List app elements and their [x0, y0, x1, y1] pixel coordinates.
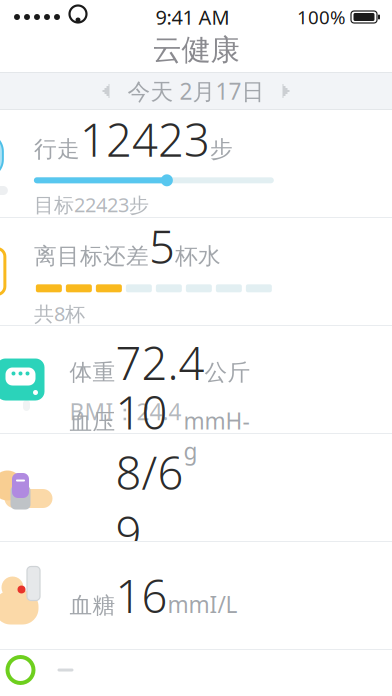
button[interactable]: 血压 — [0, 434, 392, 542]
staticText: 公斤 — [204, 358, 250, 386]
button[interactable]: 离目标还差 — [0, 218, 392, 326]
staticText: 血压 — [69, 408, 115, 436]
button[interactable]: 今天 2月17日 — [0, 73, 392, 109]
staticText: 5 — [149, 216, 175, 276]
staticText: mmHg — [183, 406, 249, 466]
staticText: 今天 2月17日 — [127, 76, 264, 106]
staticText: 9:41 AM — [155, 4, 229, 30]
staticText: 步 — [210, 135, 233, 163]
staticText: 离目标还差 — [34, 242, 149, 270]
staticText: 16 — [115, 565, 167, 626]
staticText: 云健康 — [152, 32, 239, 68]
staticText: 杯水 — [175, 242, 221, 270]
staticText: 100% — [297, 5, 346, 29]
staticText: BMI：24.4 — [69, 396, 181, 427]
staticText: 共8杯 — [34, 300, 85, 327]
staticText: 12423 — [80, 109, 210, 169]
button[interactable]: 血糖 — [0, 542, 392, 650]
staticText: 行走 — [34, 135, 80, 163]
button[interactable]: 体重 — [0, 326, 392, 434]
staticText: 目标22423步 — [34, 191, 149, 218]
button[interactable]: 行走 — [0, 110, 392, 218]
staticText: 108/69 — [115, 382, 183, 562]
staticText: 体重 — [69, 358, 115, 386]
staticText: 血糖 — [69, 592, 115, 619]
staticText: mmI/L — [167, 589, 237, 619]
staticText: 心率83次 — [69, 566, 151, 593]
staticText: 72.4 — [115, 332, 204, 392]
